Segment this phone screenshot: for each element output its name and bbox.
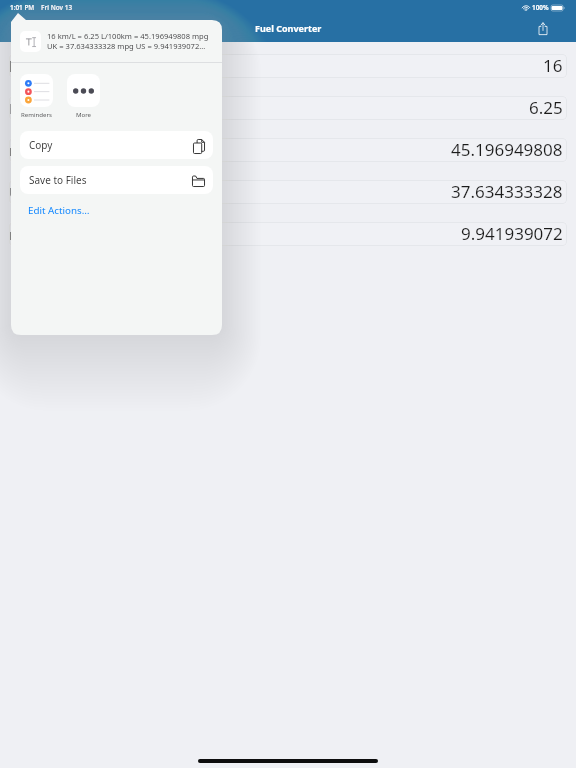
staticText: 9.941939072	[461, 222, 563, 245]
staticText: Reminders	[21, 110, 52, 118]
staticText: More	[76, 110, 92, 118]
button[interactable]: Save to Files	[20, 166, 213, 194]
staticText: 16 km/L = 6.25 L/100km = 45.196949808 mp…	[47, 31, 218, 51]
staticText: UK mpg	[9, 182, 66, 202]
staticText: 6.25	[529, 96, 563, 119]
button[interactable]: Copy	[20, 131, 213, 159]
staticText: 16	[543, 54, 563, 77]
staticText: 45.196949808	[451, 138, 563, 161]
button[interactable]: L/100km	[9, 96, 567, 120]
staticText: Save to Files	[29, 173, 87, 187]
staticText: 1:01 PM	[10, 3, 35, 12]
button[interactable]: Reminders	[20, 74, 53, 118]
button[interactable]: km/L	[9, 54, 567, 78]
staticText: mpg US	[9, 224, 65, 244]
button[interactable]: UK mpg	[9, 180, 567, 204]
button[interactable]: More	[67, 74, 100, 118]
staticText: Copy	[29, 138, 53, 152]
staticText: km/L	[9, 56, 45, 76]
staticText: 100%	[532, 3, 549, 12]
button[interactable]: Share	[527, 14, 559, 42]
staticText: Fuel Converter	[255, 22, 322, 34]
staticText: mpg	[9, 140, 42, 160]
button[interactable]: mpg	[9, 138, 567, 162]
staticText: Edit Actions…	[28, 204, 90, 217]
staticText: Fri Nov 13	[41, 3, 73, 12]
button[interactable]: Edit Actions…	[28, 204, 90, 217]
staticText: L/100km	[9, 98, 71, 118]
staticText: 37.634333328	[451, 180, 563, 203]
button[interactable]: mpg US	[9, 222, 567, 246]
